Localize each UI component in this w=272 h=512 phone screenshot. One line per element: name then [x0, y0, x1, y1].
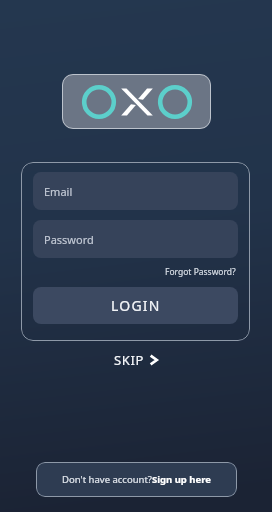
button[interactable]: Forgot Password? — [163, 265, 238, 279]
button[interactable]: Password — [33, 220, 238, 258]
staticText: LOGIN — [111, 296, 161, 315]
button[interactable]: Don't have account?Sign up here — [36, 462, 237, 497]
button[interactable]: Email — [33, 172, 238, 210]
staticText: Email — [44, 184, 73, 199]
staticText: Forgot Password? — [165, 266, 236, 278]
staticText: Password — [44, 232, 94, 247]
button[interactable]: LOGIN — [33, 287, 238, 324]
button[interactable]: SKIP — [106, 348, 166, 372]
staticText: Don't have account?Sign up here — [62, 473, 211, 486]
staticText: SKIP — [114, 351, 144, 369]
button[interactable]: OXO logo — [62, 74, 211, 129]
